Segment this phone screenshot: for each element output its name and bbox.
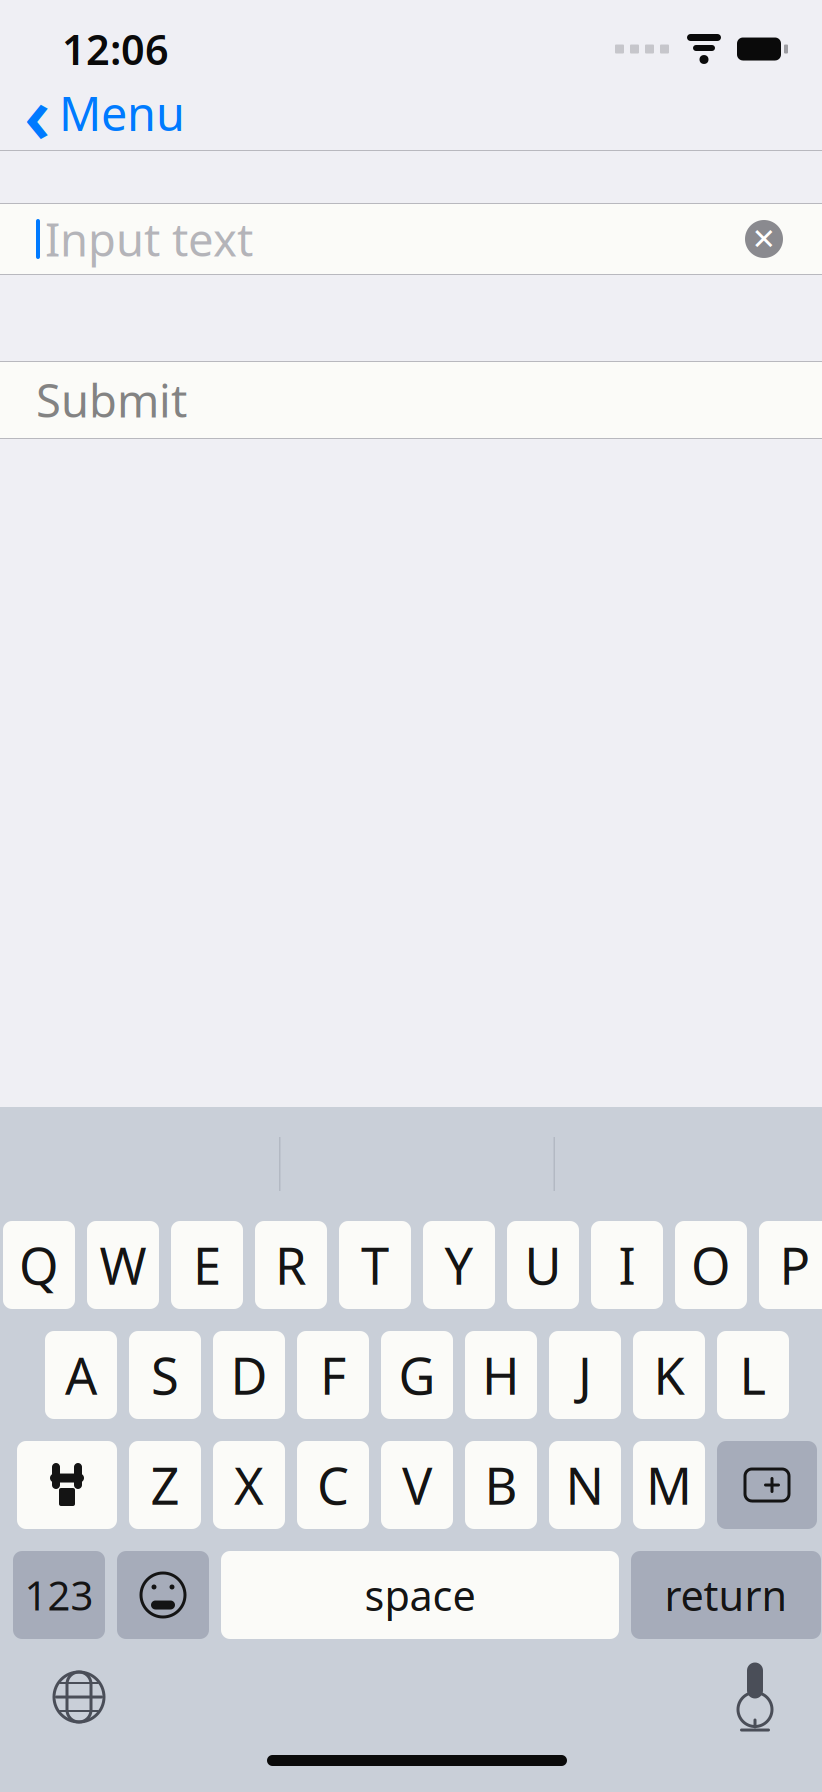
staticText: ✕ [751, 222, 776, 256]
button[interactable]: X [213, 1441, 285, 1529]
button[interactable]: A [45, 1331, 117, 1419]
staticText: space [364, 1568, 475, 1622]
button[interactable]: S [129, 1331, 201, 1419]
button[interactable]: ‹ [0, 60, 203, 166]
staticText: C [317, 1451, 349, 1519]
button[interactable]: N [549, 1441, 621, 1529]
button[interactable]: Q [3, 1221, 75, 1309]
staticText: M [646, 1451, 692, 1519]
button[interactable]: Input text [0, 204, 822, 274]
button[interactable]: Next keyboard [24, 1642, 134, 1752]
button[interactable]: R [255, 1221, 327, 1309]
button[interactable]: T [339, 1221, 411, 1309]
staticText: O [691, 1231, 731, 1299]
button[interactable]: C [297, 1441, 369, 1529]
staticText: 12:06 [62, 22, 169, 76]
staticText: F [320, 1341, 346, 1409]
staticText: G [398, 1341, 435, 1409]
button[interactable]: W [87, 1221, 159, 1309]
staticText: Menu [59, 82, 185, 144]
staticText: Z [150, 1451, 179, 1519]
staticText: R [275, 1231, 307, 1299]
staticText: ‹ [24, 62, 51, 164]
staticText: Q [19, 1231, 59, 1299]
button[interactable]: B [465, 1441, 537, 1529]
staticText: A [65, 1341, 97, 1409]
staticText: T [361, 1231, 389, 1299]
staticText: H [482, 1341, 520, 1409]
staticText: U [524, 1231, 561, 1299]
staticText: return [664, 1568, 787, 1622]
button[interactable]: M [633, 1441, 705, 1529]
button[interactable]: F [297, 1331, 369, 1419]
button[interactable]: D [213, 1331, 285, 1419]
button[interactable]: L [717, 1331, 789, 1419]
staticText: K [653, 1341, 684, 1409]
button[interactable]: Emoji [117, 1551, 209, 1639]
button[interactable]: space [221, 1551, 619, 1639]
staticText: D [230, 1341, 267, 1409]
staticText: P [779, 1231, 810, 1299]
button[interactable]: I [591, 1221, 663, 1309]
staticText: N [565, 1451, 604, 1519]
button[interactable]: return [631, 1551, 821, 1639]
staticText: E [193, 1231, 221, 1299]
button[interactable]: Submit [0, 362, 822, 438]
staticText: Y [444, 1231, 473, 1299]
button[interactable]: Y [423, 1221, 495, 1309]
button[interactable]: O [675, 1221, 747, 1309]
staticText: I [618, 1231, 635, 1299]
button[interactable]: K [633, 1331, 705, 1419]
button[interactable]: E [171, 1221, 243, 1309]
button[interactable]: Shift [17, 1441, 117, 1529]
button[interactable]: P [759, 1221, 822, 1309]
staticText: L [739, 1341, 766, 1409]
staticText: V [402, 1451, 432, 1519]
button[interactable]: Z [129, 1441, 201, 1529]
staticText: Submit [36, 370, 187, 430]
staticText: J [578, 1341, 592, 1409]
button[interactable]: G [381, 1331, 453, 1419]
button[interactable]: 123 [13, 1551, 105, 1639]
button[interactable]: Clear text [736, 211, 792, 267]
staticText: W [99, 1231, 146, 1299]
staticText: S [151, 1341, 179, 1409]
button[interactable]: Dictation [700, 1642, 810, 1752]
staticText: 123 [24, 1568, 93, 1621]
button[interactable]: J [549, 1331, 621, 1419]
button[interactable]: V [381, 1441, 453, 1529]
staticText: Input text [45, 209, 253, 269]
staticText: X [234, 1451, 264, 1519]
button[interactable]: H [465, 1331, 537, 1419]
button[interactable]: U [507, 1221, 579, 1309]
staticText: B [484, 1451, 517, 1519]
button[interactable]: Delete [717, 1441, 817, 1529]
